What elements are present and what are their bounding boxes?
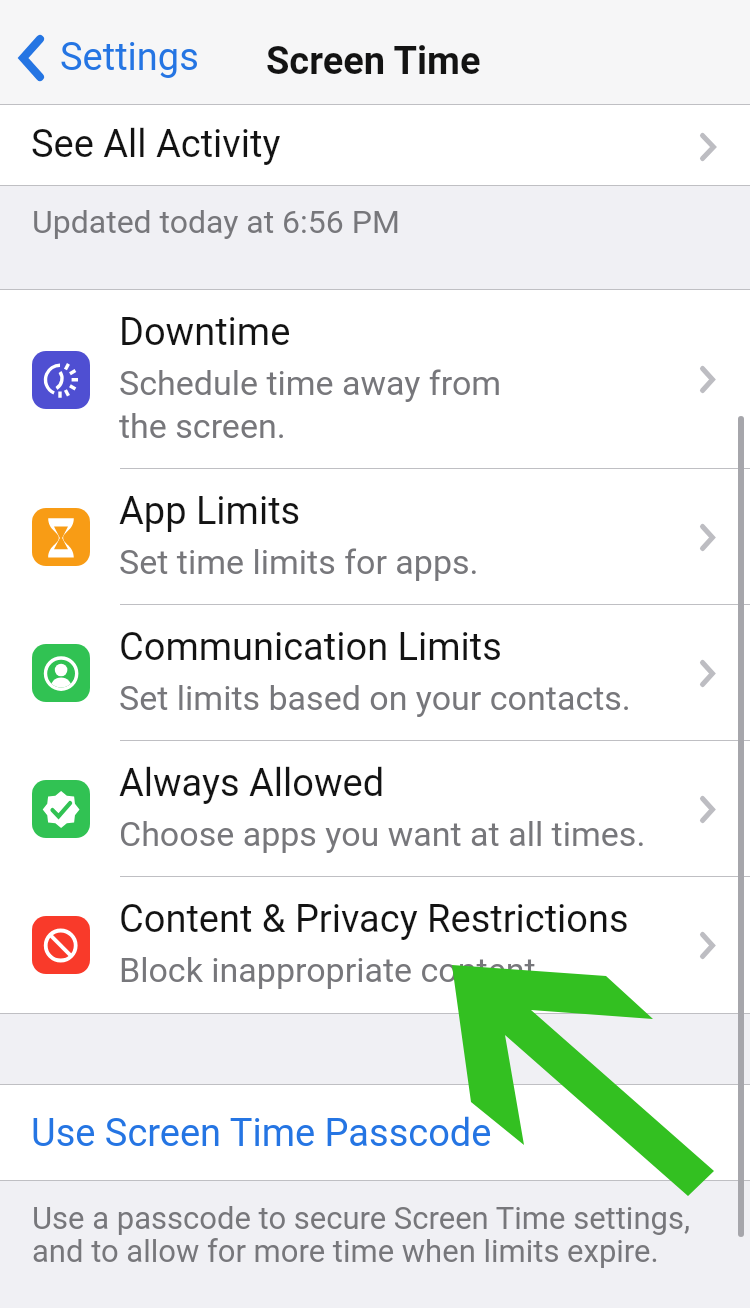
staticText: Set limits based on your contacts.: [119, 678, 631, 718]
staticText: Block inappropriate content.: [119, 950, 545, 990]
staticText: Updated today at 6:56 PM: [32, 203, 400, 241]
staticText: Set time limits for apps.: [119, 542, 479, 582]
staticText: Use a passcode to secure Screen Time set…: [32, 1200, 691, 1270]
staticText: Content & Privacy Restrictions: [119, 897, 629, 942]
button[interactable]: Always Allowed: [0, 741, 750, 877]
staticText: Screen Time: [266, 39, 481, 84]
button[interactable]: App Limits: [0, 469, 750, 605]
staticText: App Limits: [119, 489, 301, 534]
button[interactable]: Downtime: [0, 290, 750, 469]
button[interactable]: See All Activity: [0, 105, 750, 186]
button[interactable]: Communication Limits: [0, 605, 750, 741]
staticText: Always Allowed: [119, 761, 385, 806]
staticText: Schedule time away from the screen.: [119, 363, 502, 446]
staticText: Use Screen Time Passcode: [31, 1111, 492, 1156]
staticText: Downtime: [119, 310, 291, 355]
staticText: Choose apps you want at all times.: [119, 814, 646, 854]
staticText: Communication Limits: [119, 625, 502, 670]
button[interactable]: Back to Settings: [8, 24, 208, 82]
staticText: Settings: [60, 35, 199, 80]
button[interactable]: Use Screen Time Passcode: [0, 1085, 750, 1180]
staticText: See All Activity: [31, 122, 281, 167]
button[interactable]: Content & Privacy Restrictions: [0, 877, 750, 1013]
